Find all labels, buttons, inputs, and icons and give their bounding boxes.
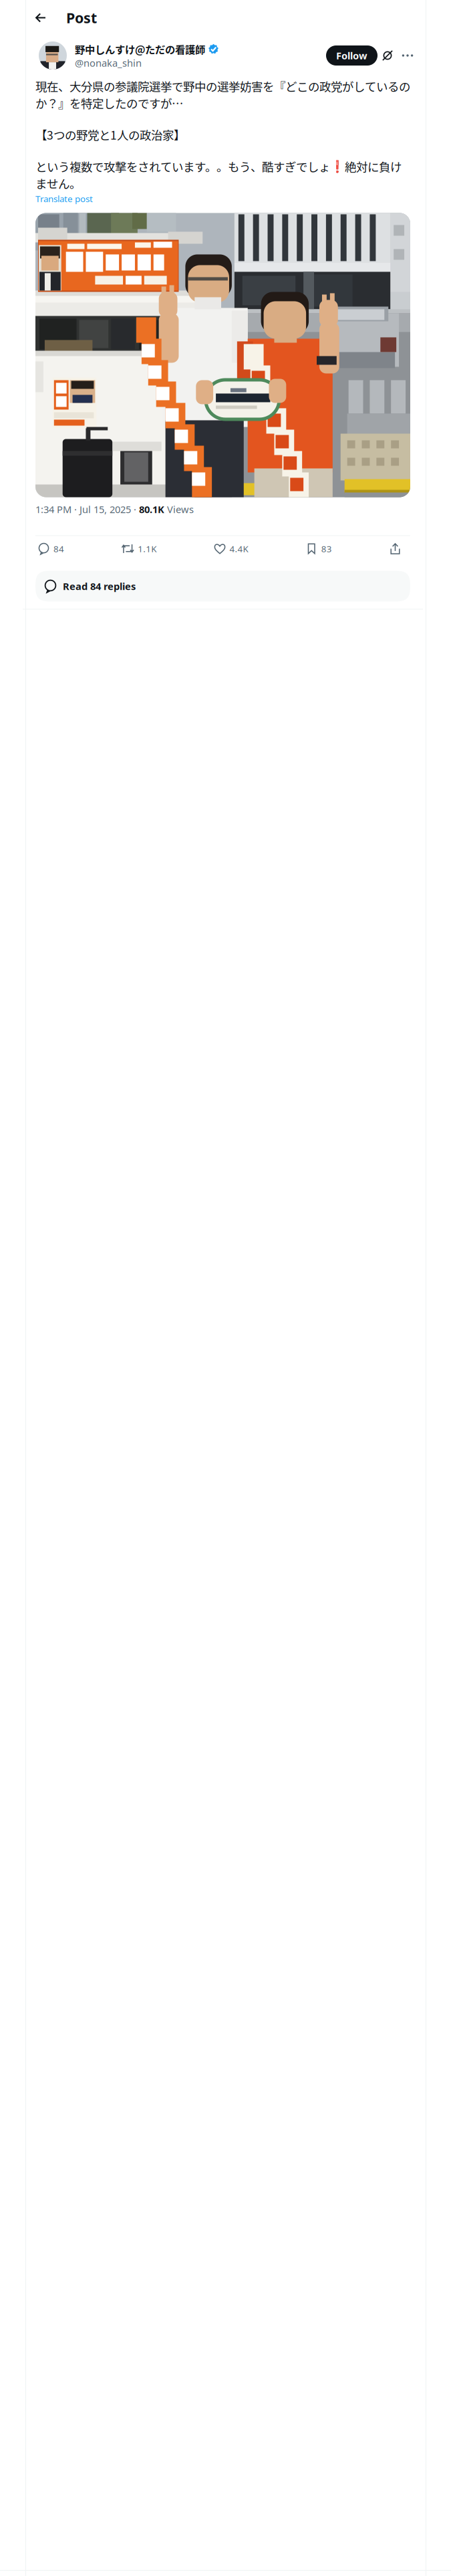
button[interactable]: 83 [306, 538, 332, 559]
staticText: 1:34 PM · Jul 15, 2025 · [35, 503, 139, 516]
staticText: 【3つの野党と1人の政治家】 [35, 126, 185, 143]
button[interactable]: 4.4K [214, 538, 248, 559]
button[interactable]: Follow [326, 45, 378, 66]
staticText: 83 [321, 543, 332, 555]
button[interactable]: Translate post [35, 192, 410, 206]
button[interactable]: Read 84 replies [35, 571, 410, 602]
staticText: 現在、大分県の参議院選挙で野中の選挙妨害を『どこの政党がしているのか？』を特定し… [35, 78, 410, 111]
staticText: Translate post [35, 193, 93, 205]
staticText: という複数で攻撃をされています。。もう、酷すぎでしょ❗絶対に負けません。 [35, 158, 402, 192]
staticText: 野中しんすけ@ただの看護師 [75, 42, 205, 56]
button[interactable]: Back [28, 5, 53, 30]
staticText: Post [66, 8, 97, 27]
staticText: 1.1K [138, 543, 156, 555]
button[interactable]: More options [398, 45, 418, 66]
button[interactable]: 1.1K [122, 538, 156, 559]
staticText: Follow [336, 49, 367, 62]
staticText: 80.1K [139, 503, 164, 516]
button[interactable]: Grok actions [378, 45, 398, 66]
button[interactable]: Share [390, 538, 401, 559]
button[interactable]: 84 [38, 538, 64, 559]
staticText: 4.4K [230, 543, 248, 555]
staticText: Views [164, 503, 194, 516]
staticText: @nonaka_shin [75, 56, 142, 69]
staticText: Read 84 replies [63, 580, 136, 593]
staticText: 84 [53, 543, 64, 555]
